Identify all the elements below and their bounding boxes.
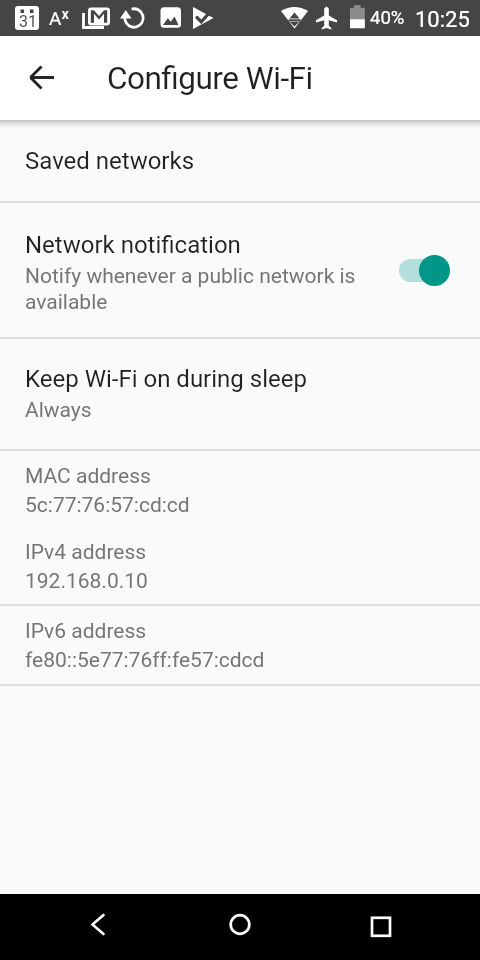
button[interactable]: MAC address bbox=[0, 451, 480, 528]
staticText: fe80::5e77:76ff:fe57:cdcd bbox=[25, 648, 265, 673]
staticText: 10:25 bbox=[415, 7, 470, 33]
staticText: IPv4 address bbox=[25, 540, 147, 565]
staticText: MAC address bbox=[25, 464, 151, 489]
staticText: 31 bbox=[19, 12, 37, 31]
staticText: Configure Wi-Fi bbox=[107, 60, 313, 97]
button[interactable]: Keep Wi-Fi on during sleep bbox=[0, 339, 480, 449]
staticText: Always bbox=[25, 398, 92, 423]
button[interactable]: Network notification toggle bbox=[399, 248, 451, 292]
button[interactable]: Home bbox=[210, 897, 270, 957]
staticText: Network notification bbox=[25, 231, 241, 259]
button[interactable]: Back bbox=[68, 897, 128, 957]
staticText: 5c:77:76:57:cd:cd bbox=[25, 493, 190, 518]
staticText: Aˣ bbox=[49, 7, 69, 29]
button[interactable]: IPv6 address bbox=[0, 606, 480, 684]
button[interactable]: IPv4 address bbox=[0, 528, 480, 604]
staticText: Keep Wi-Fi on during sleep bbox=[25, 365, 307, 393]
staticText: Saved networks bbox=[25, 147, 195, 175]
button[interactable]: Recent apps bbox=[351, 897, 411, 957]
staticText: IPv6 address bbox=[25, 619, 147, 644]
button[interactable]: Navigate up bbox=[18, 54, 66, 102]
staticText: Notify whenever a public network is avai… bbox=[25, 264, 356, 314]
staticText: 192.168.0.10 bbox=[25, 569, 148, 594]
button[interactable]: Network notification bbox=[0, 203, 480, 337]
staticText: 40% bbox=[370, 7, 405, 29]
button[interactable]: Saved networks bbox=[0, 121, 480, 201]
